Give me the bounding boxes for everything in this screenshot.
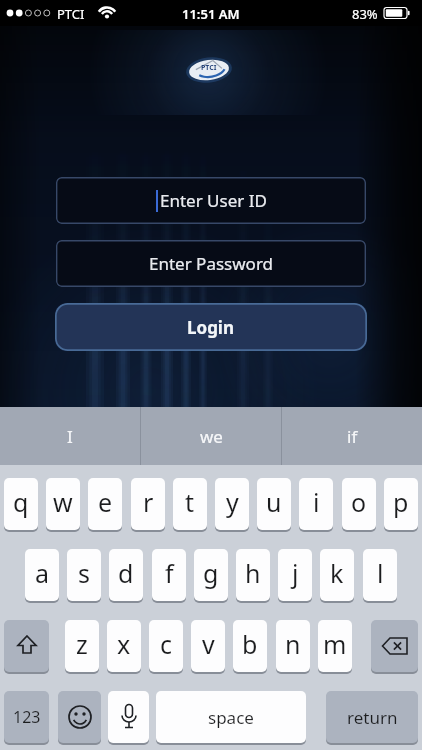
button[interactable]: h <box>236 549 270 601</box>
button[interactable] <box>4 620 49 672</box>
staticText: n <box>285 627 301 661</box>
staticText: we <box>200 425 223 448</box>
staticText: o <box>351 485 367 519</box>
staticText: h <box>245 556 261 590</box>
button[interactable]: t <box>173 478 207 530</box>
button[interactable] <box>58 691 101 743</box>
staticText: i <box>313 485 320 519</box>
button[interactable]: u <box>257 478 291 530</box>
staticText: z <box>76 627 88 661</box>
staticText: b <box>242 627 258 661</box>
staticText: if <box>347 425 358 448</box>
staticText: q <box>13 485 29 519</box>
button[interactable]: we <box>141 407 281 465</box>
button[interactable]: v <box>191 620 225 672</box>
button[interactable]: if <box>282 407 422 465</box>
staticText: s <box>78 556 90 590</box>
staticText: Enter User ID <box>160 189 267 212</box>
button[interactable]: w <box>46 478 80 530</box>
button[interactable] <box>371 620 418 672</box>
button[interactable]: Login <box>55 303 367 351</box>
button[interactable]: I <box>0 407 140 465</box>
button[interactable]: x <box>107 620 141 672</box>
staticText: e <box>98 485 113 519</box>
button[interactable]: space <box>156 691 306 743</box>
button[interactable]: r <box>131 478 165 530</box>
button[interactable]: y <box>215 478 249 530</box>
staticText: d <box>118 556 134 590</box>
staticText: g <box>203 556 219 590</box>
staticText: Login <box>187 316 235 339</box>
staticText: u <box>266 485 282 519</box>
staticText: a <box>35 556 50 590</box>
button[interactable]: n <box>276 620 310 672</box>
staticText: space <box>208 706 254 729</box>
staticText: m <box>323 627 347 661</box>
staticText: x <box>117 627 131 661</box>
button[interactable]: b <box>233 620 267 672</box>
staticText: v <box>202 627 215 661</box>
staticText: j <box>292 556 299 590</box>
staticText: return <box>347 706 398 729</box>
staticText: 83% <box>352 5 378 23</box>
button[interactable]: f <box>152 549 186 601</box>
staticText: PTCI <box>57 5 85 23</box>
staticText: f <box>165 556 174 590</box>
button[interactable]: k <box>320 549 354 601</box>
button[interactable]: j <box>278 549 312 601</box>
staticText: r <box>143 485 154 519</box>
button[interactable]: Enter Password <box>56 240 366 287</box>
button[interactable]: s <box>67 549 101 601</box>
button[interactable]: z <box>65 620 99 672</box>
button[interactable]: l <box>363 549 397 601</box>
button[interactable]: i <box>299 478 333 530</box>
staticText: t <box>185 485 195 519</box>
button[interactable]: a <box>25 549 59 601</box>
staticText: I <box>67 425 73 448</box>
button[interactable]: m <box>318 620 352 672</box>
staticText: 11:51 AM <box>182 5 240 23</box>
staticText: Enter Password <box>149 252 274 275</box>
staticText: l <box>377 556 384 590</box>
staticText: y <box>226 485 239 519</box>
button[interactable]: g <box>194 549 228 601</box>
button[interactable] <box>108 691 149 743</box>
button[interactable]: return <box>326 691 418 743</box>
button[interactable]: 123 <box>4 691 49 743</box>
button[interactable]: o <box>342 478 376 530</box>
button[interactable]: p <box>384 478 418 530</box>
button[interactable]: c <box>149 620 183 672</box>
staticText: c <box>160 627 173 661</box>
button[interactable]: Enter User ID <box>56 177 366 224</box>
button[interactable]: d <box>109 549 143 601</box>
staticText: w <box>53 485 73 519</box>
staticText: 123 <box>13 706 41 728</box>
staticText: p <box>393 485 409 519</box>
staticText: k <box>330 556 344 590</box>
button[interactable]: q <box>4 478 38 530</box>
staticText: PTCI <box>201 63 217 73</box>
button[interactable]: e <box>88 478 122 530</box>
